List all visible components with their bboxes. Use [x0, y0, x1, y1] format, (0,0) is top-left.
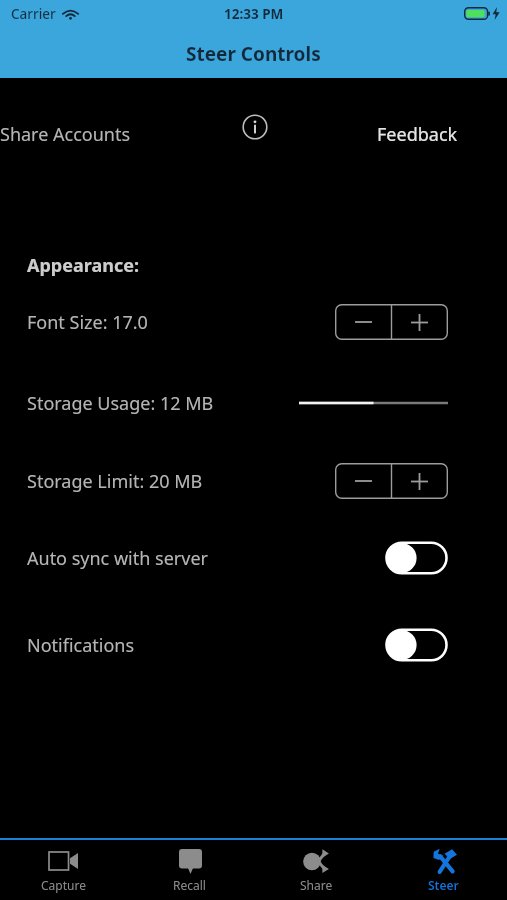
button[interactable]: Increase — [391, 304, 448, 340]
staticText: Recall — [173, 877, 206, 893]
staticText: Auto sync with server — [27, 546, 208, 571]
button[interactable]: Storage usage slider — [299, 388, 448, 418]
button[interactable]: Information — [237, 109, 273, 145]
button[interactable]: Feedback — [374, 116, 461, 153]
button[interactable]: Increase — [391, 463, 448, 499]
staticText: Storage Usage: 12 MB — [27, 391, 214, 416]
button[interactable]: Steer — [380, 841, 507, 900]
button[interactable]: Capture — [0, 841, 126, 900]
staticText: Carrier — [11, 5, 56, 23]
button[interactable]: Decrease — [335, 304, 391, 340]
staticText: Steer — [428, 877, 459, 893]
button[interactable]: Toggle — [385, 540, 448, 576]
button[interactable]: Toggle — [385, 627, 448, 663]
button[interactable]: Share — [253, 841, 380, 900]
staticText: Capture — [41, 877, 86, 893]
staticText: Notifications — [27, 633, 135, 658]
staticText: Steer Controls — [186, 41, 321, 67]
button[interactable]: Decrease — [335, 463, 391, 499]
button[interactable]: Share Accounts — [0, 116, 134, 153]
staticText: Storage Limit: 20 MB — [27, 469, 203, 494]
staticText: Share — [300, 877, 333, 893]
button[interactable]: Recall — [126, 841, 253, 900]
staticText: Font Size: 17.0 — [27, 310, 148, 335]
staticText: Appearance: — [27, 253, 139, 278]
staticText: 12:33 PM — [224, 5, 284, 23]
